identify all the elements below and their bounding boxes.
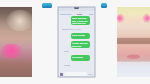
button[interactable]: App logo (42, 3, 52, 8)
button[interactable]: Good morning love, I hope you slept well… (71, 16, 90, 25)
staticText: Edit (89, 12, 94, 15)
staticText: Sent (64, 50, 69, 53)
staticText: ‹ Messages (59, 12, 72, 15)
button[interactable]: Want to grab coffee later on today (71, 33, 90, 39)
staticText: Delivered 9:41 AM (62, 28, 81, 31)
button[interactable]: Yes sounds perfect see you (71, 55, 90, 61)
button[interactable]: I found this new place just downtown (71, 41, 90, 48)
button[interactable]: ‹ Messages (58, 11, 95, 15)
staticText: I found this new place just downtown (72, 42, 89, 47)
staticText: Yes sounds perfect see you (72, 56, 89, 60)
staticText: Kate (77, 12, 83, 15)
staticText: Want to grab coffee later on today (72, 34, 89, 38)
staticText: Send (88, 73, 94, 76)
button[interactable]: App logo (101, 3, 107, 8)
staticText: Today (64, 64, 71, 67)
button[interactable]: Camera (60, 73, 63, 76)
staticText: Good morning love, I hope you slept well… (72, 17, 89, 24)
